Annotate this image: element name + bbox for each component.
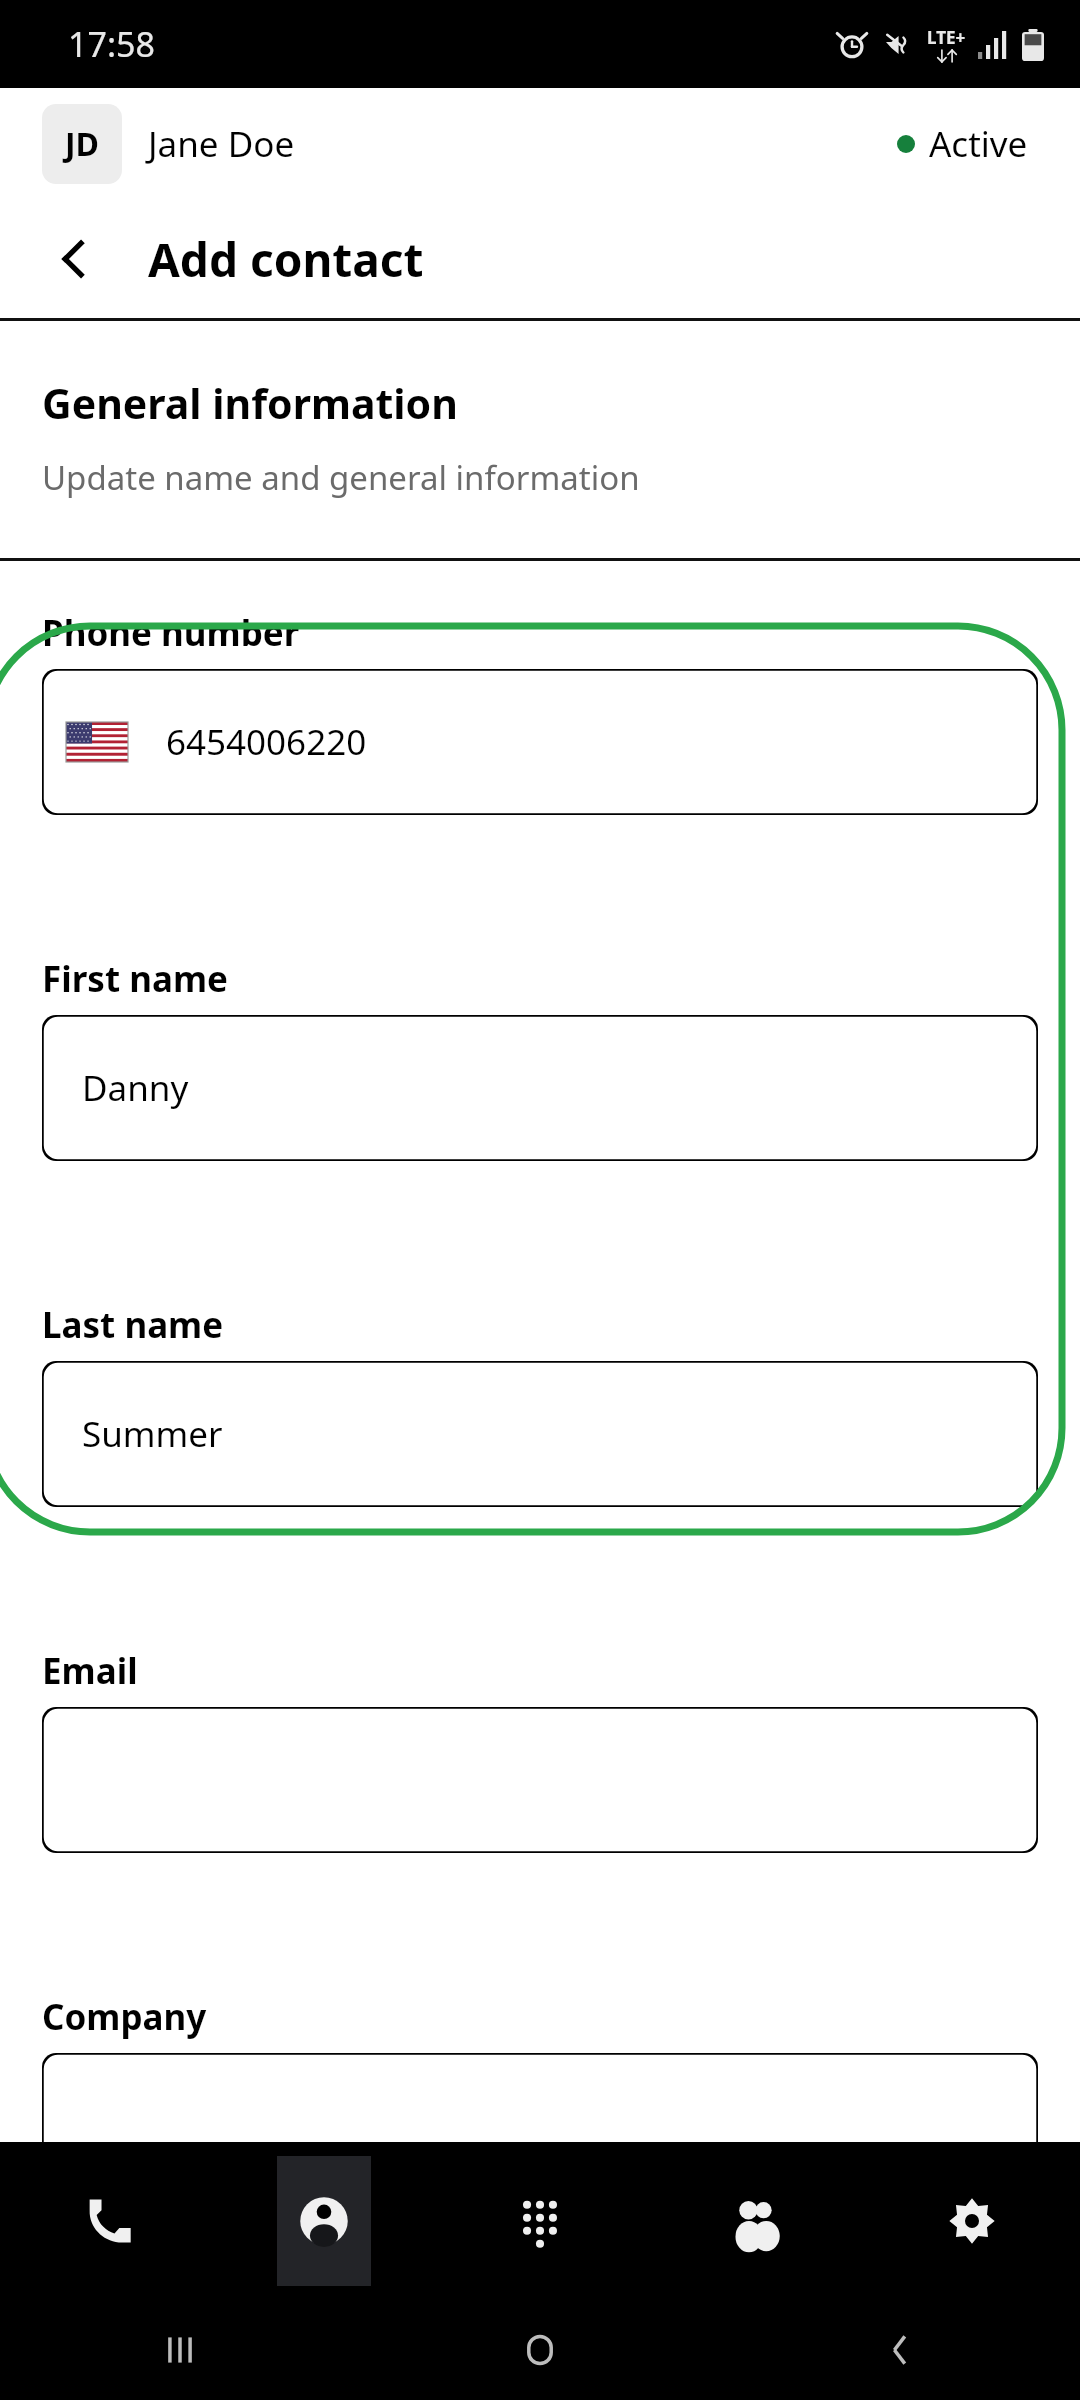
staticText: 6454006220 — [166, 718, 367, 766]
button[interactable]: Danny — [42, 1015, 1038, 1161]
staticText: Update name and general information — [42, 455, 640, 500]
staticText: 17:58 — [68, 21, 155, 67]
staticText: General information — [42, 375, 458, 431]
button[interactable]: Groups — [648, 2142, 864, 2300]
staticText: Phone number — [42, 609, 300, 657]
staticText: JD — [65, 122, 100, 166]
button[interactable]: JD — [0, 88, 1080, 200]
button[interactable]: Settings — [864, 2142, 1080, 2300]
button[interactable] — [42, 1707, 1038, 1853]
button[interactable]: Contacts — [216, 2142, 432, 2300]
button[interactable]: Summer — [42, 1361, 1038, 1507]
button[interactable] — [42, 2053, 1038, 2199]
staticText: Danny — [82, 1064, 189, 1112]
staticText: Jane Doe — [148, 120, 295, 168]
staticText: Add contact — [148, 228, 424, 291]
staticText: Email — [42, 1647, 138, 1695]
staticText: Company — [42, 1993, 207, 2041]
staticText: Last name — [42, 1301, 224, 1349]
button[interactable]: Calls — [0, 2142, 216, 2300]
staticText: Active — [929, 120, 1028, 168]
button[interactable]: 6454006220 — [42, 669, 1038, 815]
staticText: First name — [42, 955, 228, 1003]
staticText: Summer — [82, 1410, 223, 1458]
button[interactable]: Back — [30, 215, 118, 303]
button[interactable]: Keypad — [432, 2142, 648, 2300]
staticText: LTE+ — [927, 26, 966, 49]
